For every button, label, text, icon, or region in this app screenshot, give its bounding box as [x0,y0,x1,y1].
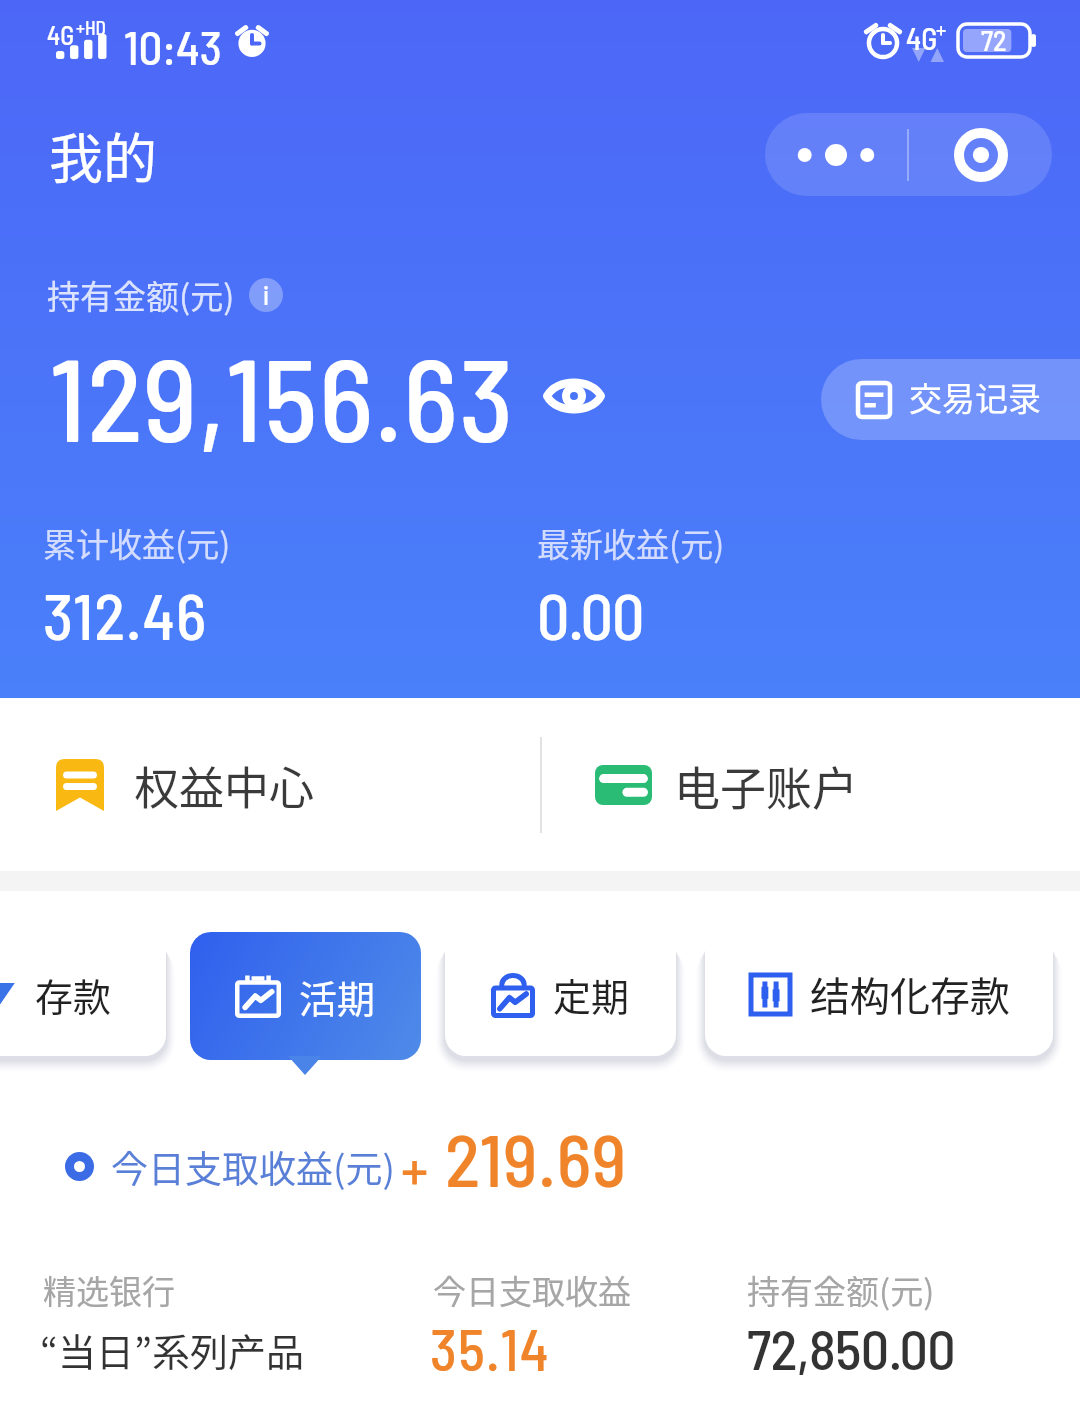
staticText: “当日”系列产品 [40,1322,305,1377]
staticText: 72,850.00 [747,1314,956,1381]
button[interactable]: 权益中心 [56,698,540,871]
staticText: 今日支取收益(元) [111,1140,396,1194]
staticText: 今日支取收益 [433,1266,631,1314]
button[interactable]: 结构化存款 [705,932,1053,1056]
button[interactable]: Info [249,278,283,312]
staticText: 持有金额(元) [47,271,235,319]
staticText: 电子账户 [674,752,858,819]
button[interactable]: More options [765,113,907,196]
button[interactable]: 定期 [445,932,676,1056]
staticText: + [401,1133,429,1203]
staticText: 交易记录 [909,373,1041,421]
staticText: 35.14 [430,1314,550,1382]
staticText: 结构化存款 [810,965,1010,1023]
staticText: 权益中心 [134,753,315,818]
staticText: i [263,279,270,310]
staticText: 312.46 [43,576,208,653]
staticText: 最新收益(元) [537,519,725,567]
staticText: 4G [906,20,938,56]
button[interactable]: 活期 [190,932,421,1060]
staticText: 定期 [553,967,630,1022]
staticText: 持有金额(元) [747,1266,935,1314]
button[interactable]: 交易记录 [821,359,1080,440]
staticText: 累计收益(元) [43,519,231,567]
staticText: 129,156.63 [50,327,515,465]
staticText: 活期 [299,969,376,1024]
staticText: 0.00 [537,576,644,653]
staticText: 72 [981,23,1007,56]
button[interactable]: 存款 [0,932,166,1056]
staticText: +HD [76,16,106,39]
button[interactable]: Toggle amount visibility [543,375,605,417]
staticText: 存款 [35,967,112,1022]
staticText: 我的 [49,116,157,194]
staticText: 精选银行 [43,1266,175,1314]
staticText: 10:43 [124,18,222,74]
staticText: 219.69 [445,1114,628,1202]
button[interactable]: 电子账户 [595,698,1080,871]
button[interactable]: Close mini program [909,113,1052,196]
staticText: + [936,16,947,42]
staticText: 4G [47,19,75,50]
